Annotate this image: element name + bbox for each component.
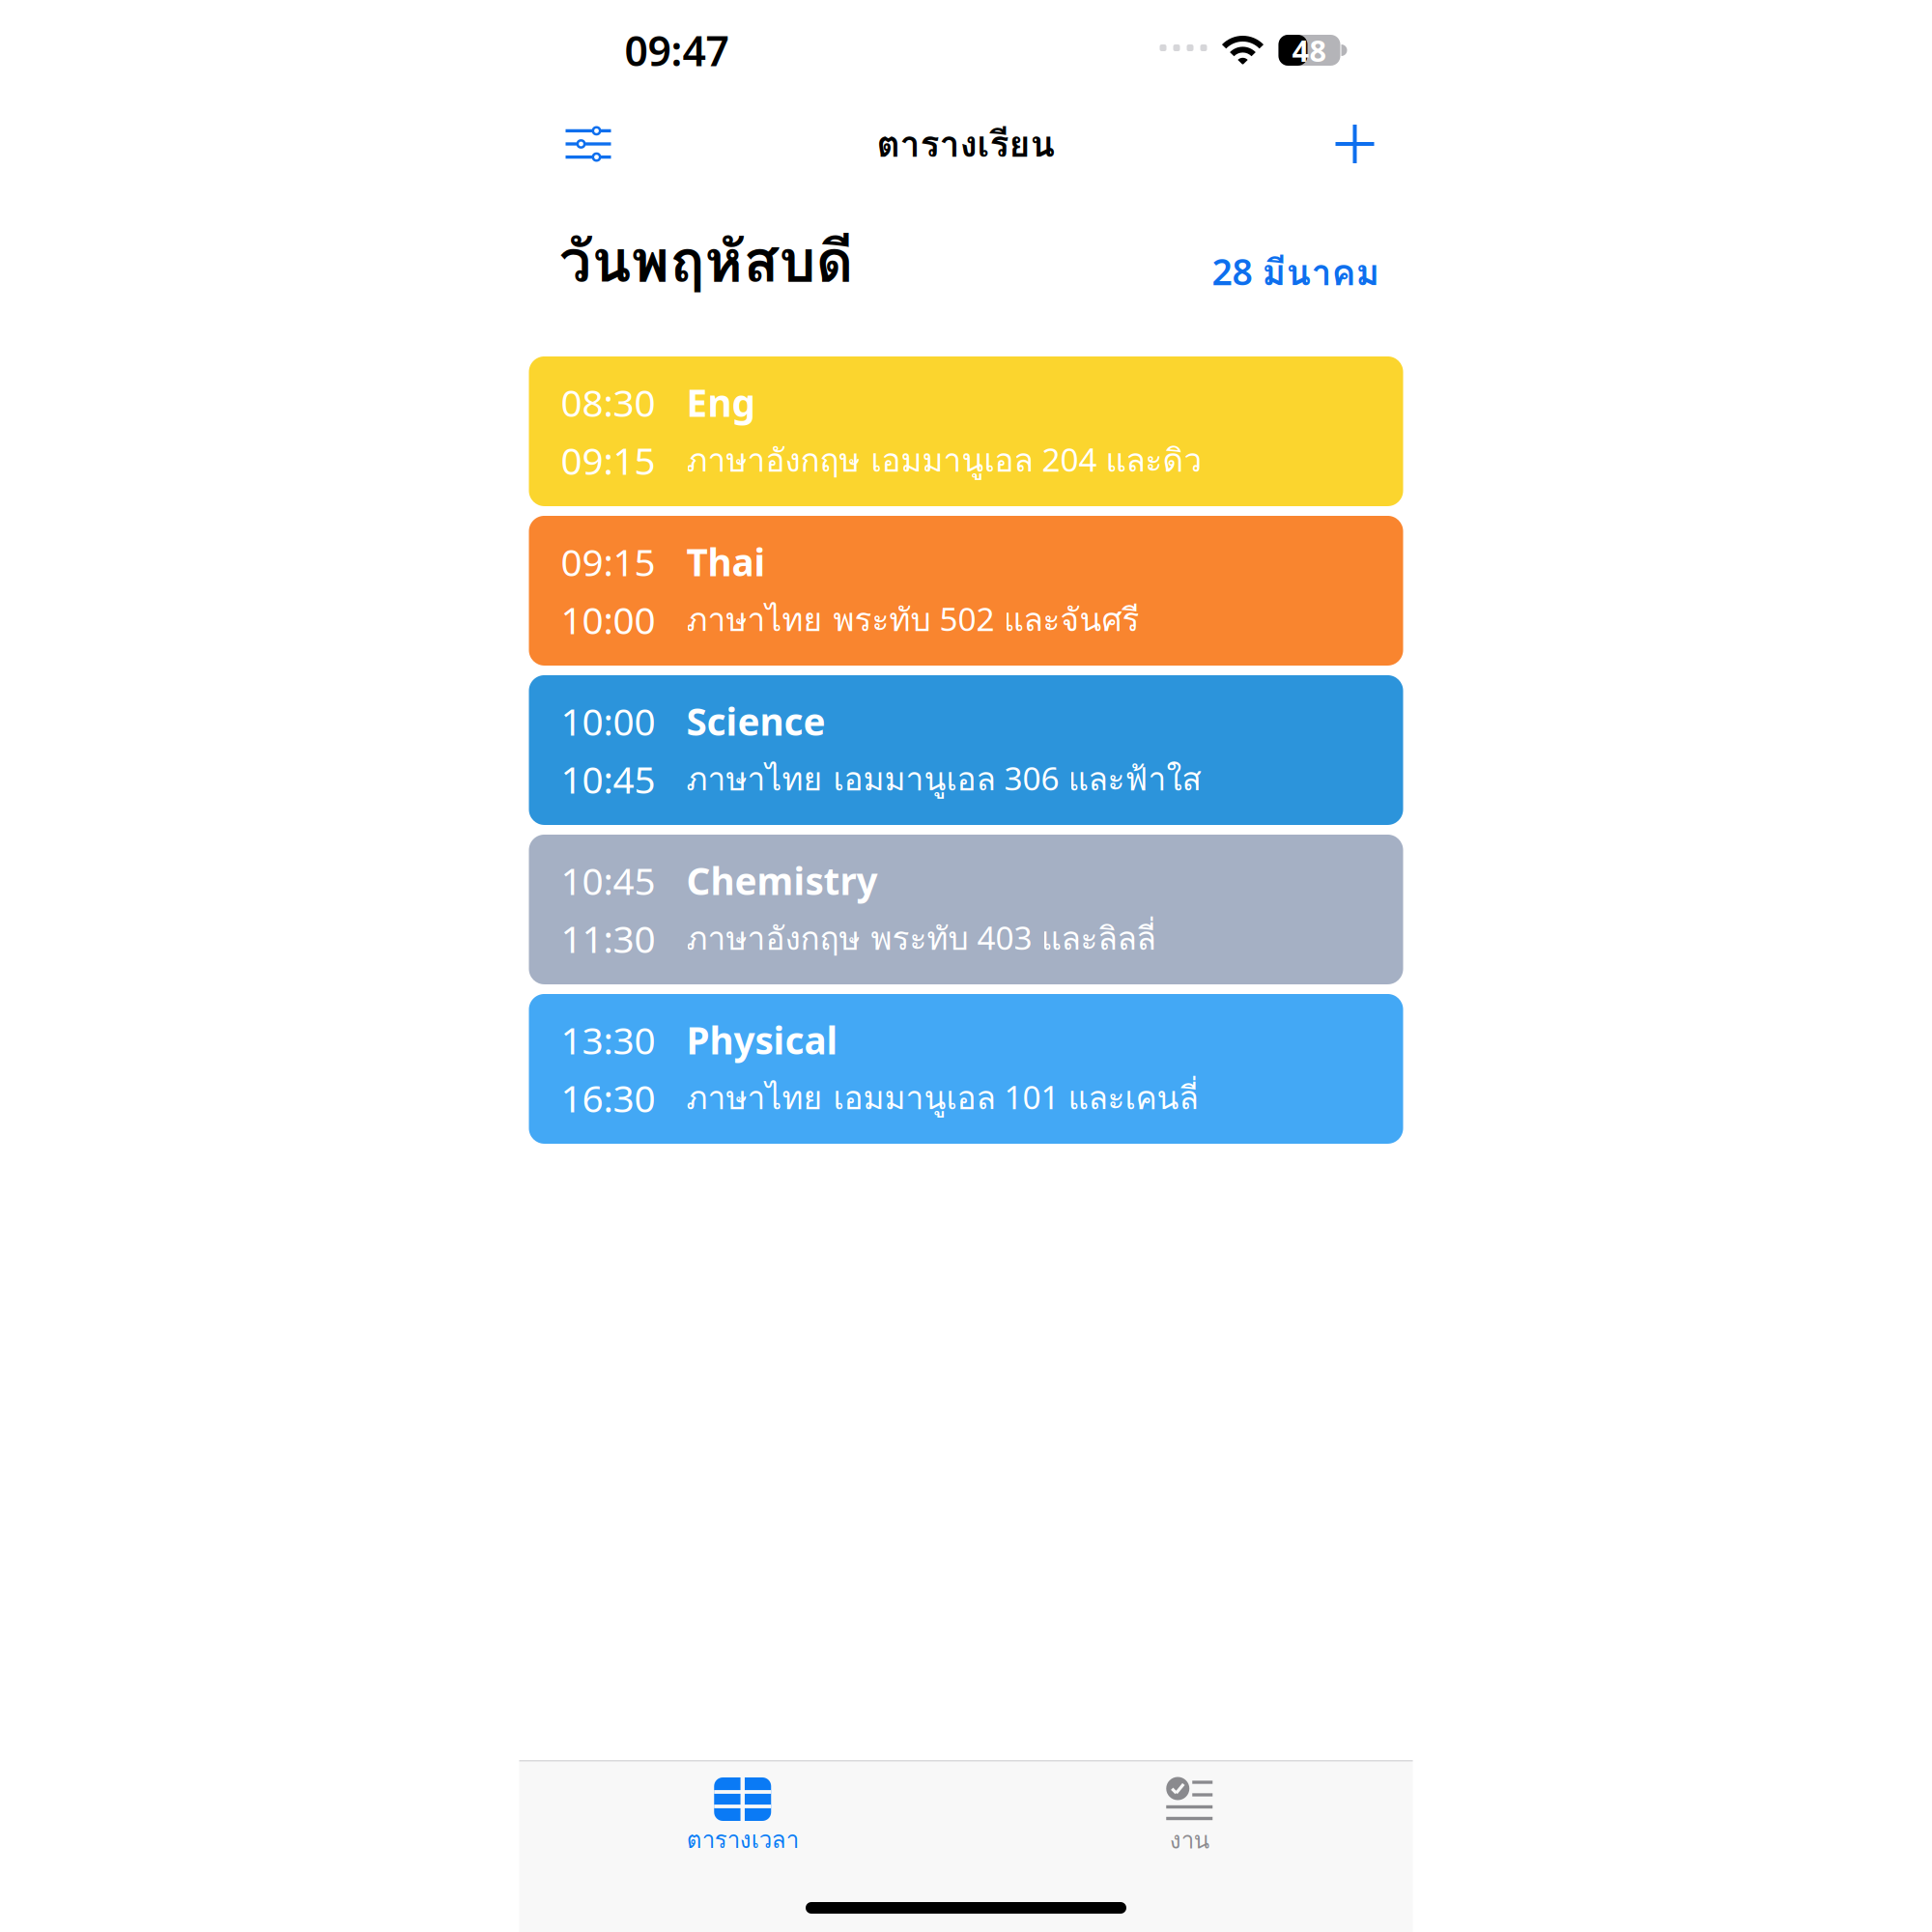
button[interactable]: Add class bbox=[1318, 105, 1392, 183]
staticText: ภาษาไทย เอมมานูเอล 306 และฟ้าใส bbox=[686, 754, 1201, 804]
staticText: Eng bbox=[686, 378, 755, 427]
staticText: 10:45 bbox=[561, 754, 655, 804]
staticText: 09:15 bbox=[561, 537, 655, 586]
staticText: 13:30 bbox=[561, 1015, 655, 1065]
staticText: 08:30 bbox=[561, 378, 655, 427]
staticText: 11:30 bbox=[561, 914, 655, 963]
button[interactable]: 08:30 bbox=[529, 356, 1403, 506]
staticText: 48 bbox=[1292, 31, 1327, 70]
staticText: 10:00 bbox=[561, 595, 655, 644]
staticText: ภาษาไทย พระทับ 502 และจันศรี bbox=[686, 595, 1139, 645]
staticText: Physical bbox=[686, 1015, 838, 1065]
staticText: 09:47 bbox=[625, 23, 729, 78]
staticText: 28 มีนาคม bbox=[1212, 244, 1380, 300]
staticText: ภาษาอังกฤษ พระทับ 403 และลิลลี่ bbox=[686, 914, 1156, 963]
button[interactable]: Filter bbox=[548, 107, 628, 181]
staticText: วันพฤหัสบดี bbox=[559, 216, 853, 306]
button[interactable]: 10:45 bbox=[529, 835, 1403, 984]
button[interactable]: 28 มีนาคม bbox=[1212, 244, 1380, 306]
button[interactable]: 10:00 bbox=[529, 675, 1403, 825]
button[interactable]: งาน bbox=[966, 1762, 1413, 1858]
staticText: ตารางเรียน bbox=[877, 116, 1055, 172]
staticText: Science bbox=[686, 696, 825, 746]
staticText: Thai bbox=[686, 537, 766, 586]
staticText: ตารางเวลา bbox=[687, 1822, 799, 1858]
button[interactable]: ตารางเวลา bbox=[519, 1762, 966, 1858]
staticText: 10:00 bbox=[561, 696, 655, 746]
staticText: ภาษาไทย เอมมานูเอล 101 และเคนลี่ bbox=[686, 1073, 1198, 1123]
staticText: งาน bbox=[1170, 1822, 1209, 1858]
staticText: 16:30 bbox=[561, 1073, 655, 1123]
staticText: 10:45 bbox=[561, 856, 655, 905]
button[interactable]: 09:15 bbox=[529, 516, 1403, 666]
button[interactable]: 13:30 bbox=[529, 994, 1403, 1144]
staticText: 09:15 bbox=[561, 435, 655, 485]
staticText: ภาษาอังกฤษ เอมมานูเอล 204 และดิว bbox=[686, 435, 1202, 485]
staticText: Chemistry bbox=[686, 856, 878, 905]
